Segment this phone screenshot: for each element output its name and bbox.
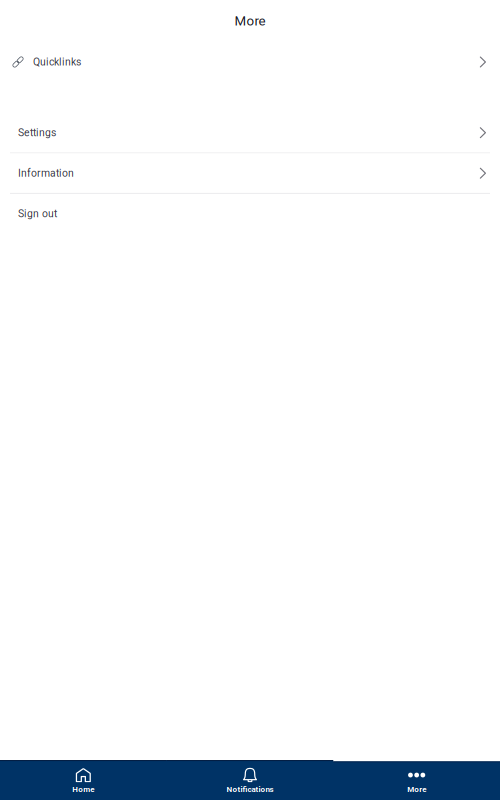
staticText: More bbox=[234, 13, 265, 29]
staticText: Quicklinks bbox=[33, 56, 81, 68]
staticText: Notifications bbox=[226, 784, 273, 794]
button[interactable]: Notifications bbox=[167, 760, 333, 800]
button[interactable]: Quicklinks bbox=[0, 42, 500, 82]
staticText: Information bbox=[18, 167, 74, 179]
staticText: Sign out bbox=[18, 208, 57, 220]
staticText: Settings bbox=[18, 127, 56, 139]
staticText: More bbox=[407, 784, 426, 794]
staticText: Home bbox=[72, 784, 94, 794]
button[interactable]: Settings bbox=[0, 113, 500, 152]
button[interactable]: More bbox=[333, 760, 500, 800]
button[interactable]: Information bbox=[0, 153, 500, 193]
button[interactable]: Sign out bbox=[0, 194, 500, 233]
button[interactable]: Home bbox=[0, 760, 167, 800]
